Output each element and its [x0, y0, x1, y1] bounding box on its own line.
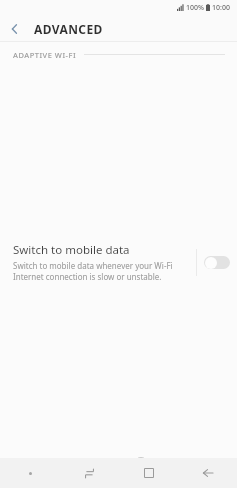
staticText: ADAPTIVE WI-FI — [13, 50, 77, 60]
button[interactable]: Navigate up — [0, 15, 28, 42]
staticText: 10:00 — [212, 3, 230, 13]
button[interactable]: Back — [178, 458, 237, 488]
staticText: 100% — [186, 3, 204, 13]
button[interactable]: Home — [119, 458, 178, 488]
button[interactable]: Recent apps — [60, 458, 119, 488]
staticText: Switch to mobile data — [13, 242, 130, 258]
staticText: ADVANCED — [34, 21, 103, 37]
button[interactable]: Switch to mobile data — [0, 67, 237, 458]
staticText: Switch to mobile data whenever your Wi-F… — [13, 260, 173, 282]
button[interactable]: Toggle — [204, 256, 230, 269]
